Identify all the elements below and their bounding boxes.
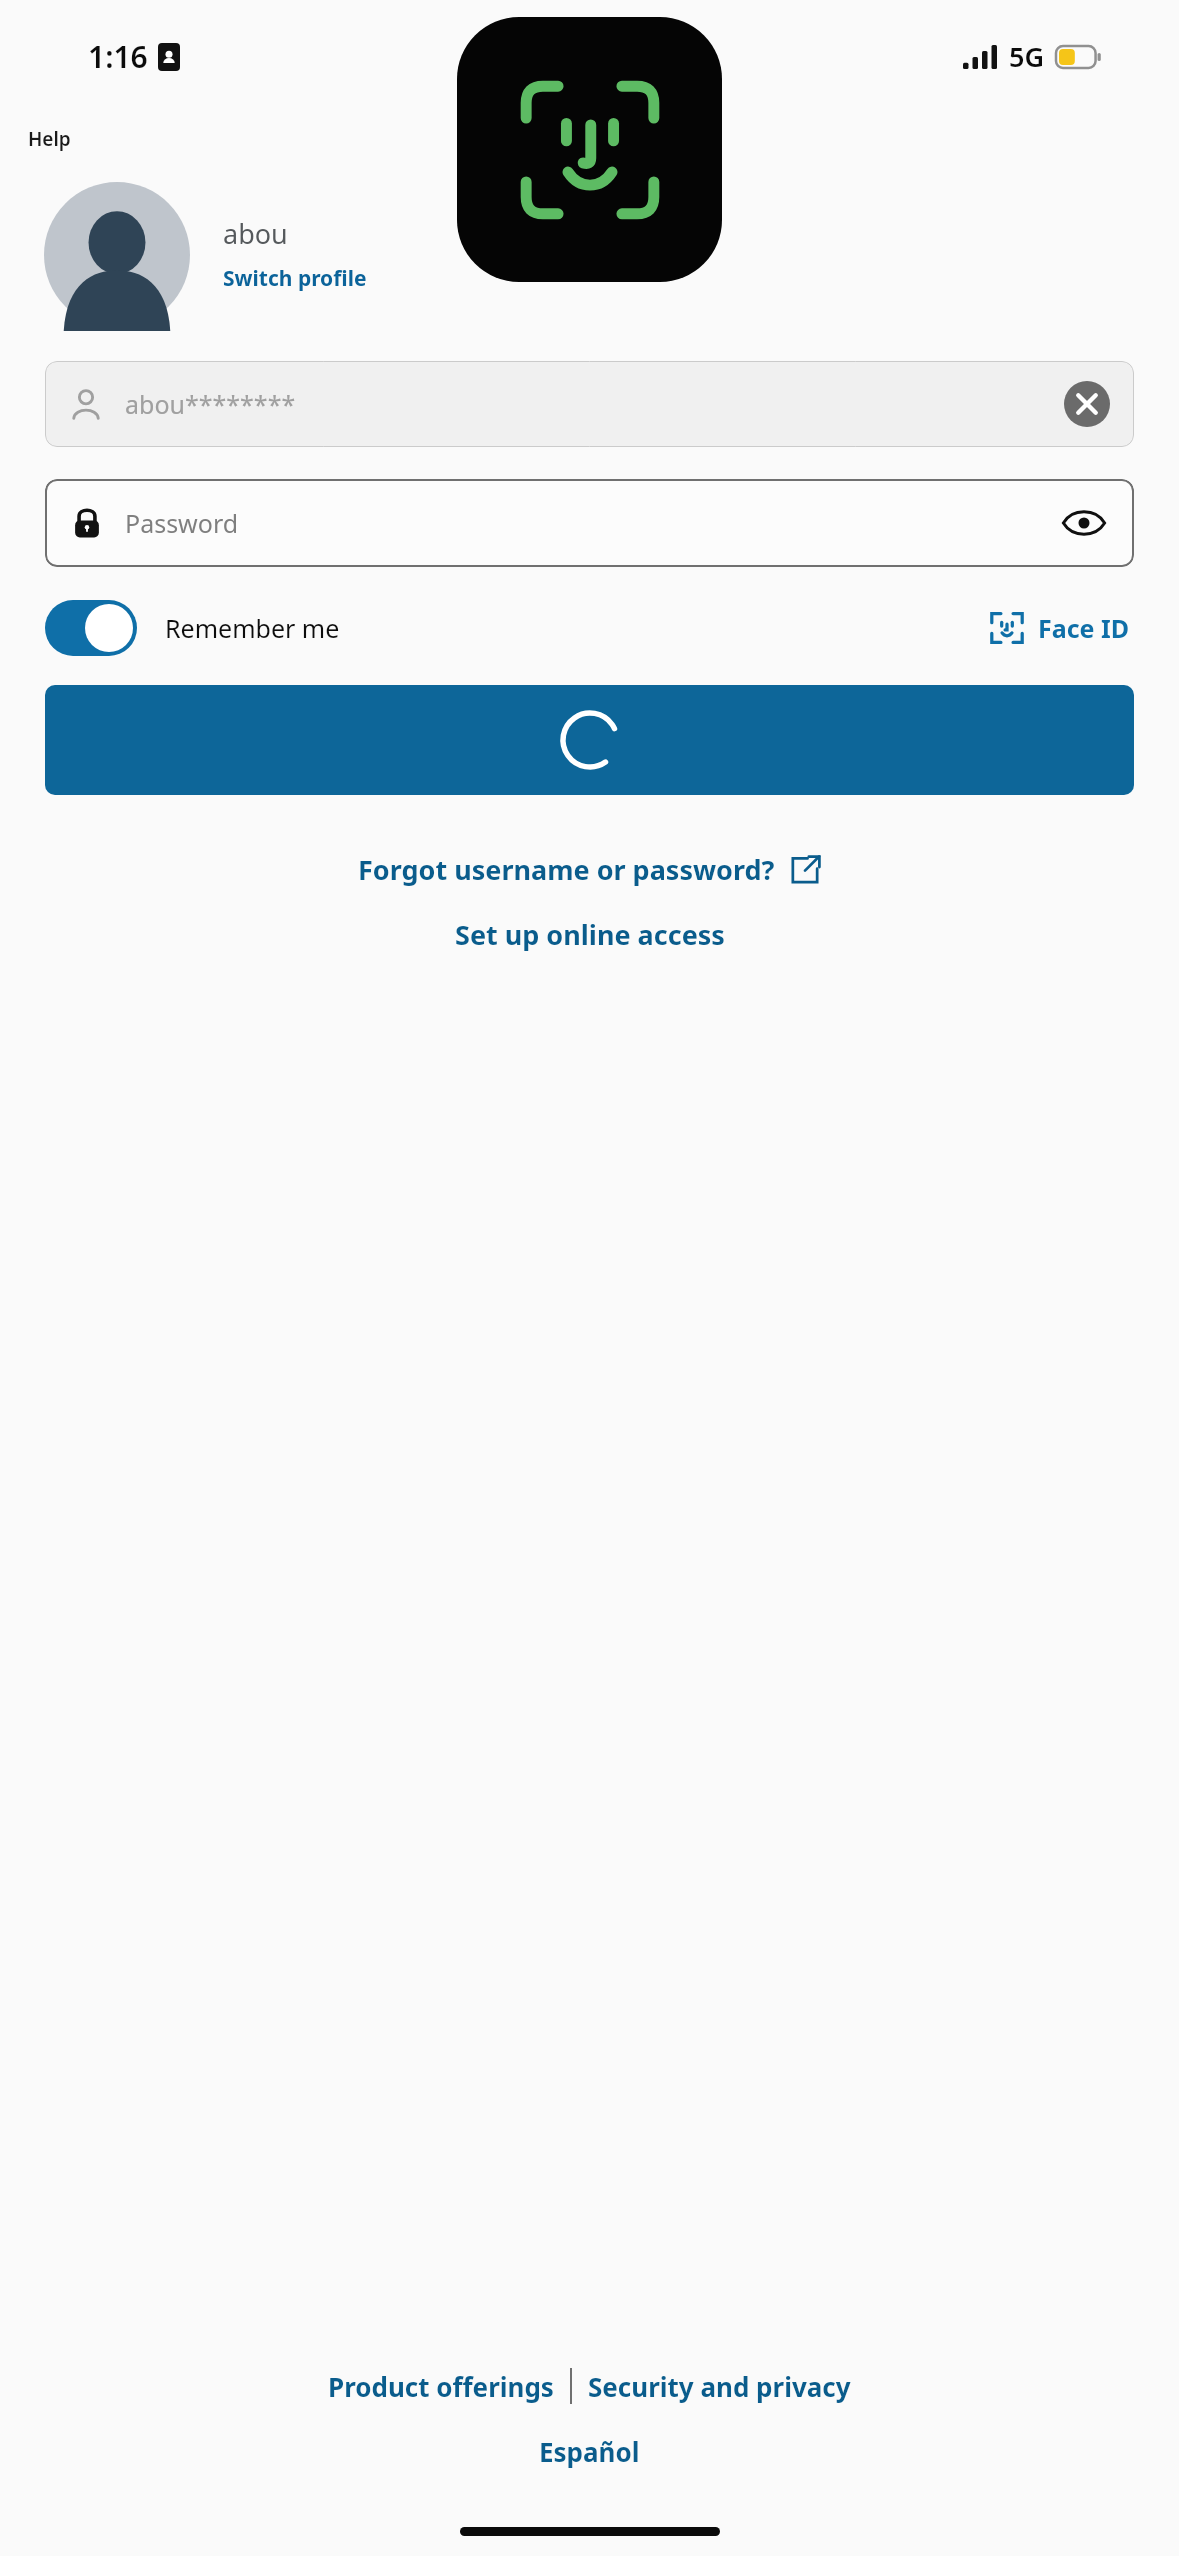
staticText: abou [223, 215, 288, 252]
button[interactable]: Set up online access [0, 916, 1179, 953]
button[interactable]: Switch profile [223, 262, 367, 295]
staticText: Face ID [1038, 611, 1130, 645]
button[interactable]: Sign in, loading [45, 685, 1134, 795]
other: Face ID [457, 17, 722, 282]
staticText: abou******** [125, 387, 296, 421]
staticText: Forgot username or password? [358, 851, 775, 888]
staticText: Product offerings [328, 2369, 554, 2404]
button[interactable]: Show password [1058, 497, 1110, 549]
staticText: Security and privacy [588, 2369, 851, 2404]
staticText: Help [28, 126, 71, 152]
staticText: Set up online access [455, 916, 725, 953]
button[interactable]: Español [0, 2434, 1179, 2469]
staticText: 5G [1009, 38, 1045, 75]
staticText: Remember me [165, 611, 340, 645]
button[interactable]: Forgot username or password? [0, 851, 1179, 888]
staticText: Switch profile [223, 264, 367, 293]
button[interactable]: Security and privacy [588, 2369, 851, 2404]
button[interactable]: Help [26, 122, 73, 156]
button[interactable]: Product offerings [328, 2369, 554, 2404]
button[interactable]: abou******** [45, 361, 1134, 447]
button[interactable]: Clear username [1064, 381, 1110, 427]
staticText: Password [125, 506, 239, 540]
button[interactable]: Password [45, 479, 1134, 567]
button[interactable]: Remember me [45, 600, 340, 656]
staticText: Español [539, 2434, 640, 2469]
button[interactable]: Face ID [984, 605, 1134, 651]
staticText: 1:16 [88, 36, 148, 77]
